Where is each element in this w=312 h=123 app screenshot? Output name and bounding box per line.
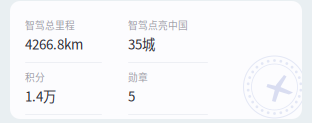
staticText: 35城: [128, 34, 155, 53]
staticText: 智驾点亮中国: [128, 18, 188, 32]
staticText: 4266.8km: [25, 34, 83, 53]
staticText: 勋章: [128, 70, 148, 84]
staticText: 1.4万: [25, 86, 56, 105]
staticText: 5: [128, 86, 135, 105]
staticText: 智驾总里程: [25, 18, 75, 32]
button[interactable]: 勋章: [128, 70, 208, 115]
staticText: 积分: [25, 70, 45, 84]
button[interactable]: 智驾点亮中国: [128, 18, 208, 63]
button[interactable]: 积分: [25, 70, 102, 115]
button[interactable]: 智驾总里程: [25, 18, 102, 63]
